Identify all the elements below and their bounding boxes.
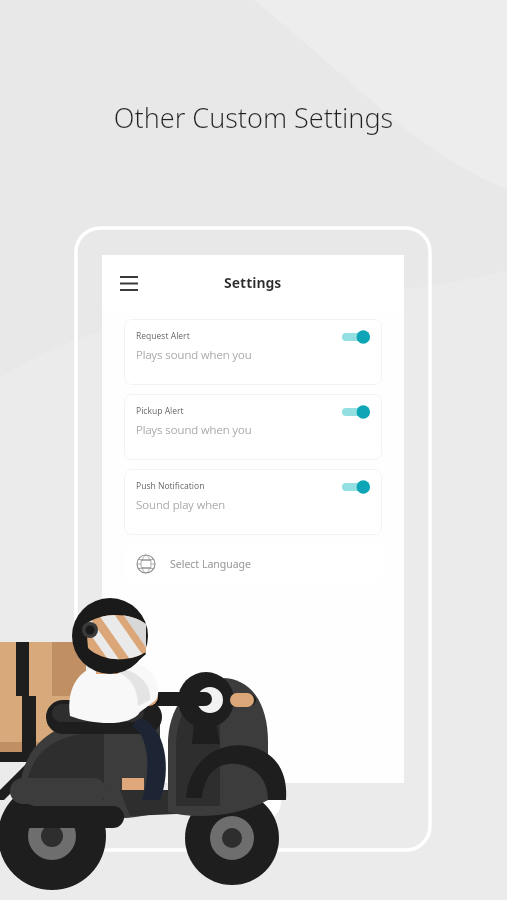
button[interactable]: Request Alert toggle [340,328,372,346]
staticText: Plays sound when you [136,422,252,438]
button[interactable]: Push Notification [124,469,382,535]
button[interactable]: Pickup Alert [124,394,382,460]
button[interactable]: Pickup Alert toggle [340,403,372,421]
button[interactable]: Select Language [124,544,382,584]
button[interactable]: Request Alert [124,319,382,385]
staticText: Plays sound when you [136,347,252,363]
staticText: Sound play when [136,497,226,513]
staticText: Pickup Alert [136,405,184,417]
staticText: Request Alert [136,330,190,342]
button[interactable]: Push Notification toggle [340,478,372,496]
staticText: Other Custom Settings [0,99,507,136]
button[interactable]: Open navigation menu [116,270,142,296]
staticText: Push Notification [136,480,205,492]
staticText: Select Language [170,557,251,571]
staticText: Settings [224,273,282,292]
